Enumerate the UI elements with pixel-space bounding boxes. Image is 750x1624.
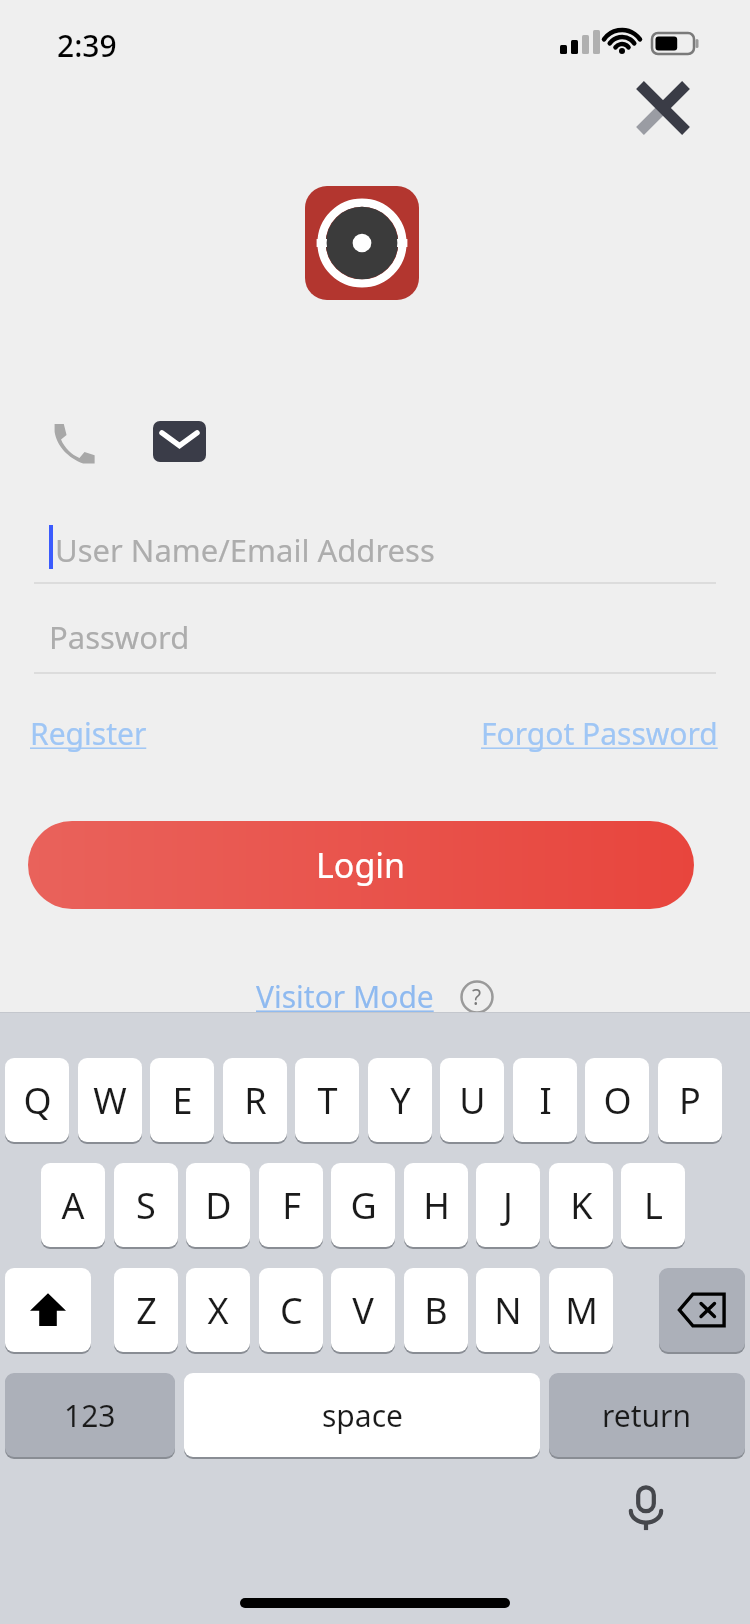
button[interactable]: R: [223, 1058, 287, 1142]
button[interactable]: Close: [625, 70, 701, 146]
button[interactable]: Login: [28, 821, 694, 909]
staticText: E: [172, 1076, 193, 1125]
button[interactable]: S: [114, 1163, 178, 1247]
staticText: F: [282, 1181, 301, 1230]
staticText: Visitor Mode: [256, 976, 434, 1017]
staticText: W: [93, 1076, 127, 1125]
button[interactable]: V: [331, 1268, 395, 1352]
button[interactable]: Dictate: [608, 1470, 684, 1546]
staticText: C: [280, 1286, 303, 1335]
staticText: G: [350, 1181, 377, 1230]
staticText: Login: [316, 842, 406, 888]
staticText: L: [644, 1181, 663, 1230]
staticText: A: [61, 1181, 85, 1230]
button[interactable]: Z: [114, 1268, 178, 1352]
button[interactable]: C: [259, 1268, 323, 1352]
button[interactable]: Register: [24, 705, 153, 762]
button[interactable]: K: [549, 1163, 613, 1247]
staticText: return: [602, 1395, 692, 1436]
button[interactable]: Shift: [5, 1268, 91, 1352]
staticText: M: [565, 1286, 598, 1335]
button[interactable]: N: [476, 1268, 540, 1352]
button[interactable]: Password: [36, 592, 714, 670]
button[interactable]: Phone login: [40, 408, 106, 474]
staticText: space: [322, 1395, 403, 1436]
button[interactable]: O: [585, 1058, 649, 1142]
staticText: B: [424, 1286, 448, 1335]
staticText: Password: [49, 616, 190, 658]
staticText: O: [603, 1076, 632, 1125]
button[interactable]: F: [259, 1163, 323, 1247]
staticText: J: [503, 1181, 513, 1230]
staticText: X: [207, 1286, 229, 1335]
staticText: Forgot Password: [481, 713, 718, 754]
button[interactable]: W: [78, 1058, 142, 1142]
button[interactable]: J: [476, 1163, 540, 1247]
button[interactable]: P: [658, 1058, 722, 1142]
button[interactable]: A: [41, 1163, 105, 1247]
staticText: Register: [30, 713, 147, 754]
button[interactable]: E: [150, 1058, 214, 1142]
button[interactable]: Backspace: [659, 1268, 745, 1352]
staticText: 123: [64, 1395, 116, 1436]
staticText: Y: [390, 1076, 411, 1125]
button[interactable]: Q: [5, 1058, 69, 1142]
staticText: 2:39: [57, 25, 117, 66]
staticText: H: [423, 1181, 450, 1230]
button[interactable]: L: [621, 1163, 685, 1247]
staticText: S: [136, 1181, 156, 1230]
button[interactable]: User Name/Email Address: [36, 505, 714, 583]
staticText: K: [570, 1181, 593, 1230]
button[interactable]: U: [440, 1058, 504, 1142]
button[interactable]: Y: [368, 1058, 432, 1142]
button[interactable]: I: [513, 1058, 577, 1142]
button[interactable]: 123: [5, 1373, 175, 1457]
button[interactable]: Help: [456, 976, 498, 1018]
button[interactable]: space: [184, 1373, 540, 1457]
button[interactable]: Visitor Mode: [252, 972, 438, 1021]
staticText: P: [679, 1076, 701, 1125]
staticText: User Name/Email Address: [55, 529, 435, 571]
staticText: D: [205, 1181, 232, 1230]
staticText: N: [494, 1286, 522, 1335]
staticText: ?: [472, 983, 482, 1012]
staticText: V: [352, 1286, 374, 1335]
button[interactable]: return: [549, 1373, 745, 1457]
button[interactable]: D: [186, 1163, 250, 1247]
button[interactable]: Forgot Password: [475, 705, 724, 762]
button[interactable]: X: [186, 1268, 250, 1352]
staticText: T: [317, 1076, 338, 1125]
button[interactable]: T: [295, 1058, 359, 1142]
button[interactable]: Email login: [146, 408, 212, 474]
staticText: Z: [136, 1286, 157, 1335]
staticText: R: [244, 1076, 267, 1125]
button[interactable]: M: [549, 1268, 613, 1352]
staticText: I: [539, 1076, 552, 1125]
button[interactable]: B: [404, 1268, 468, 1352]
staticText: Q: [23, 1076, 52, 1125]
button[interactable]: G: [331, 1163, 395, 1247]
button[interactable]: H: [404, 1163, 468, 1247]
staticText: U: [459, 1076, 486, 1125]
